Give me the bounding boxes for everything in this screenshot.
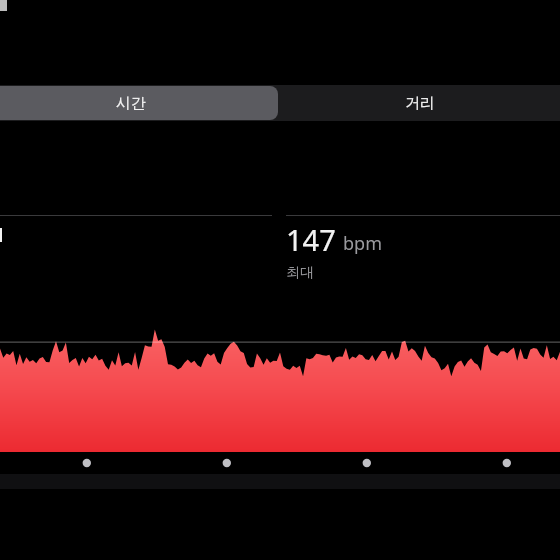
staticText: 최대 bbox=[286, 264, 314, 282]
staticText: 거리 bbox=[405, 94, 435, 113]
button[interactable]: 거리 bbox=[280, 85, 560, 121]
staticText: bpm bbox=[343, 231, 382, 256]
button[interactable]: Page indicator bbox=[0, 452, 560, 474]
button[interactable]: 시간 bbox=[0, 86, 278, 120]
staticText: 147 bbox=[286, 220, 336, 259]
staticText: 시간 bbox=[116, 94, 146, 113]
